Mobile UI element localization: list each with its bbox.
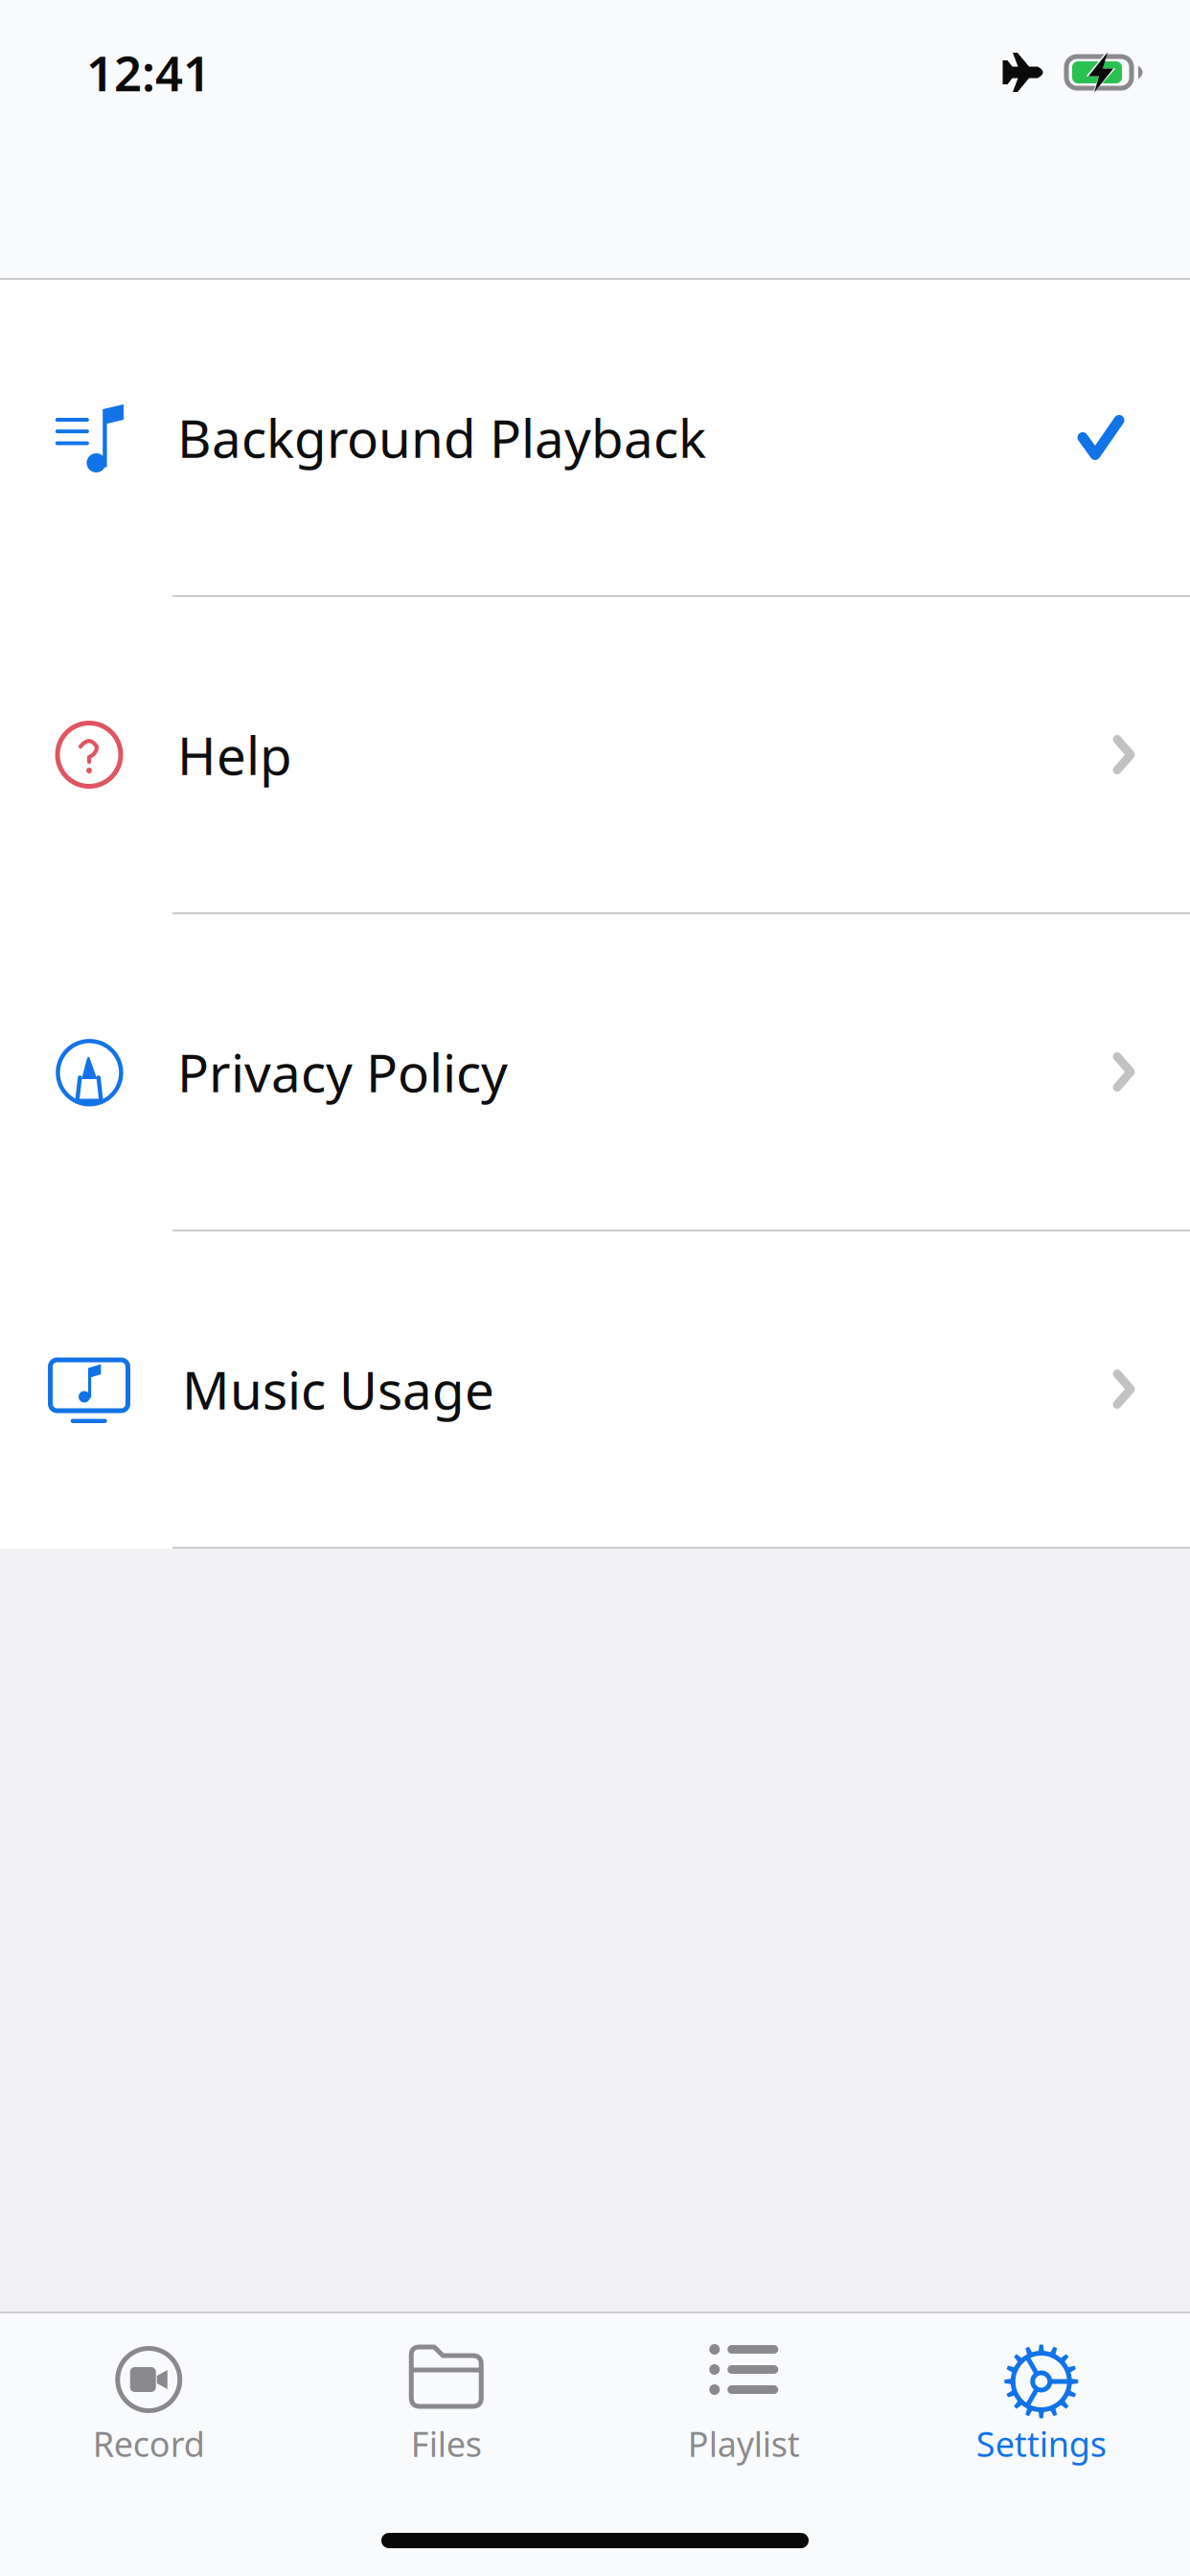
staticText: Record	[93, 2421, 205, 2467]
button[interactable]: Help	[0, 597, 1190, 914]
staticText: Privacy Policy	[177, 1037, 508, 1107]
staticText: Playlist	[688, 2421, 800, 2467]
staticText: Files	[411, 2421, 482, 2467]
button[interactable]: Files	[297, 2313, 595, 2491]
staticText: 12:41	[86, 40, 211, 105]
button[interactable]: Settings	[892, 2313, 1190, 2491]
staticText: Settings	[976, 2421, 1106, 2467]
button[interactable]: Record	[0, 2313, 297, 2491]
button[interactable]: Background Playback	[0, 280, 1190, 597]
staticText: Background Playback	[177, 403, 706, 472]
staticText: Help	[177, 720, 292, 789]
staticText: Music Usage	[182, 1354, 494, 1424]
button[interactable]: Music Usage	[0, 1231, 1190, 1549]
button[interactable]: Privacy Policy	[0, 914, 1190, 1231]
button[interactable]: Playlist	[595, 2313, 892, 2491]
